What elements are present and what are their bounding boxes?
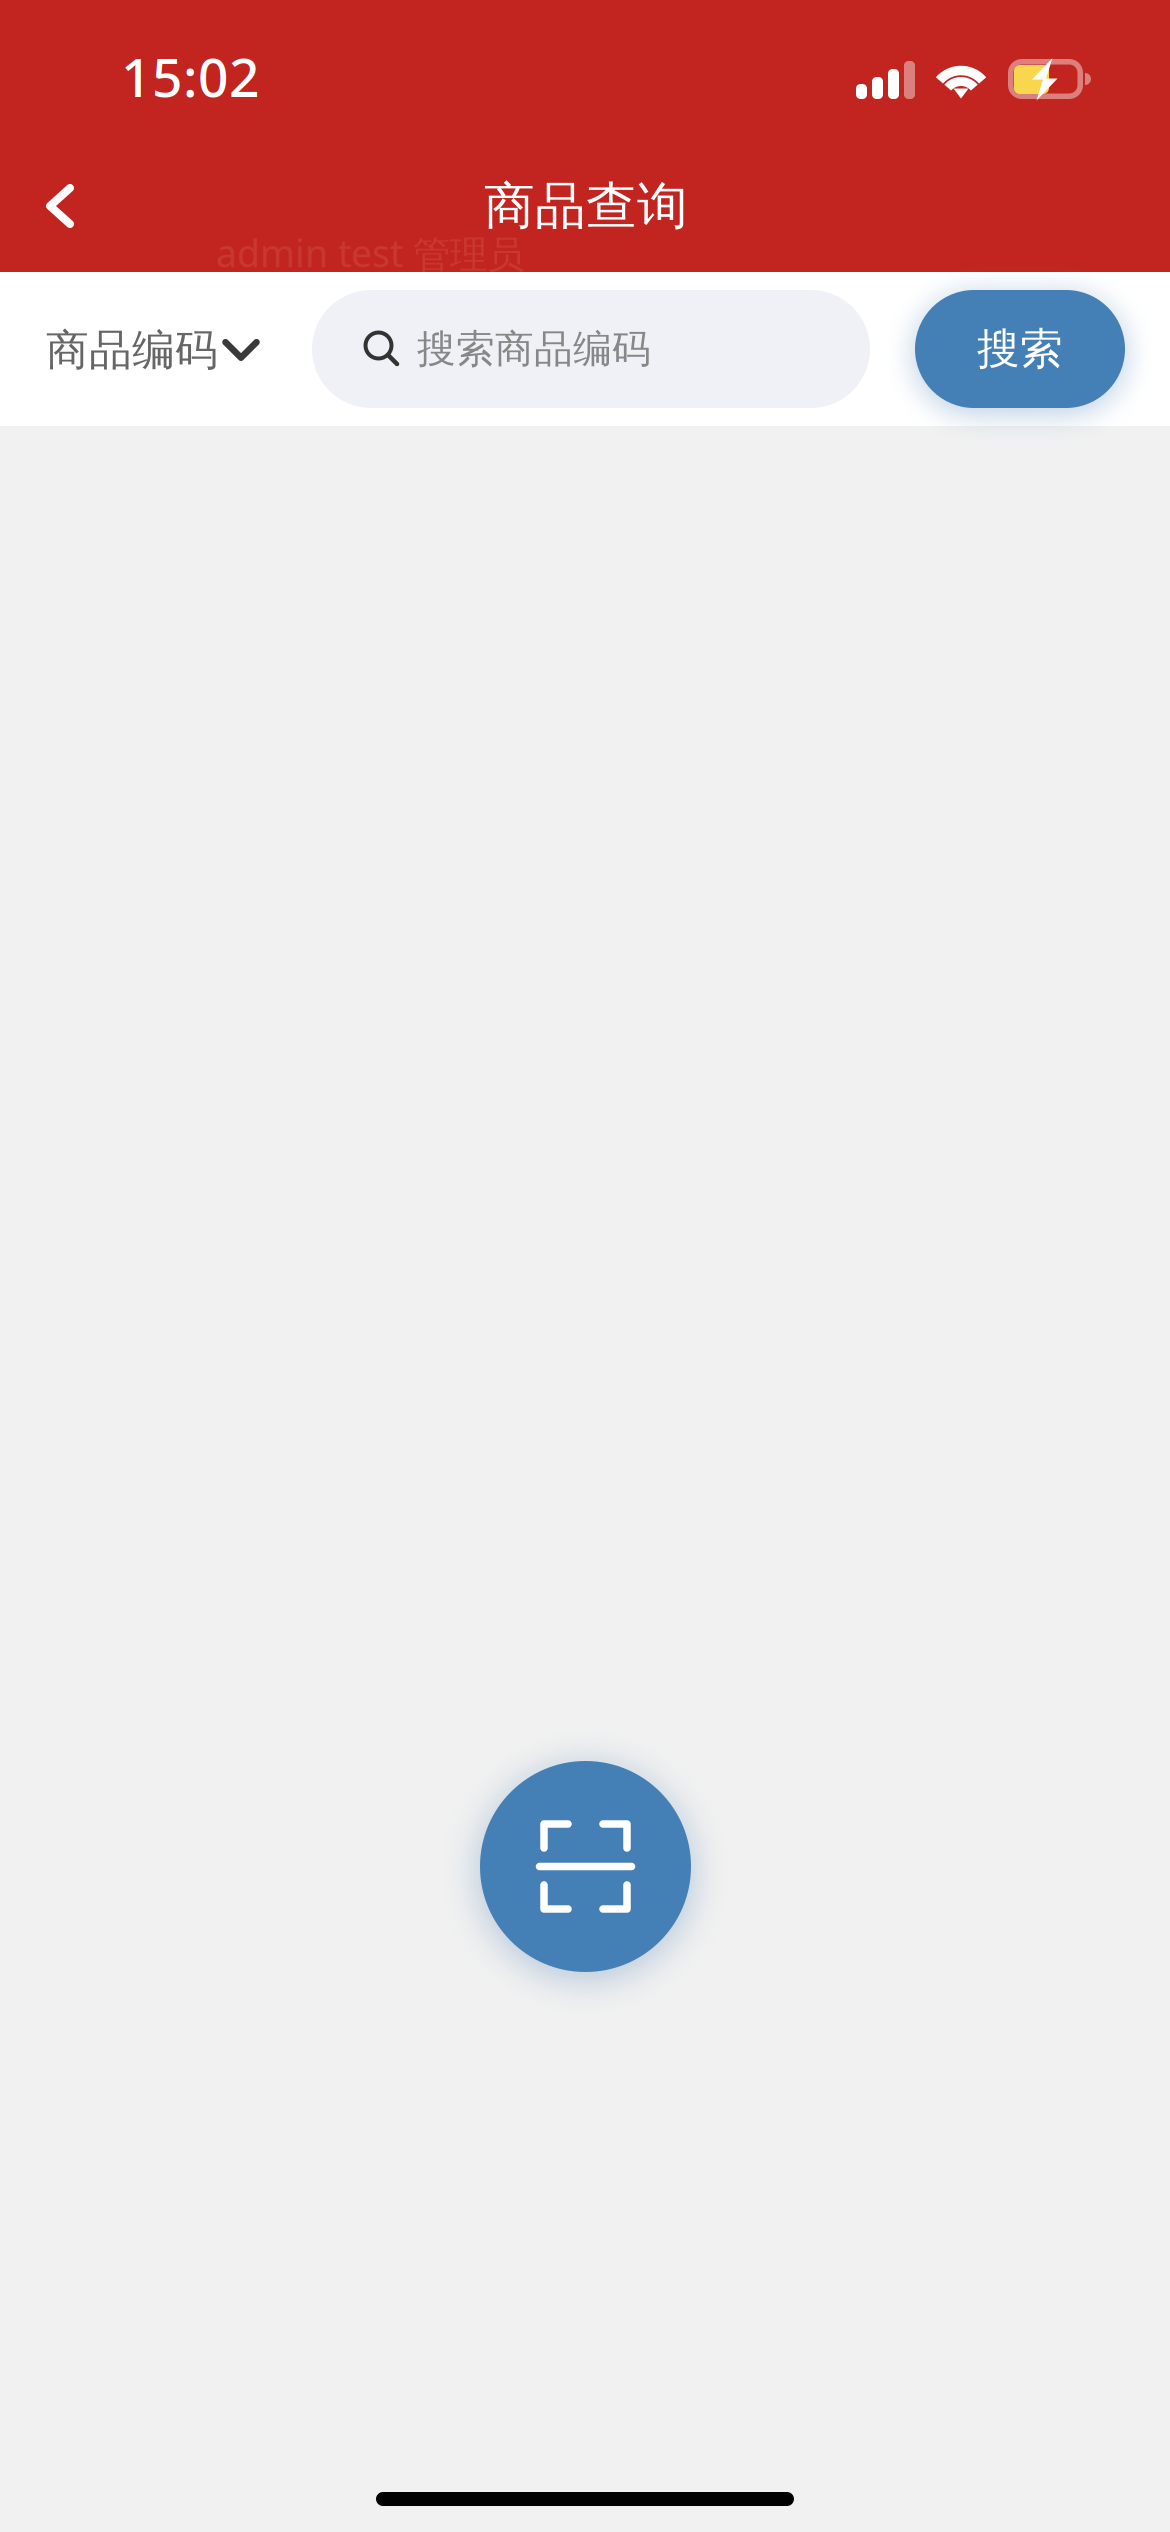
staticText: 商品编码 xyxy=(46,324,218,376)
button[interactable]: 商品编码 xyxy=(36,298,270,402)
button[interactable]: Scan barcode xyxy=(480,1761,691,1972)
staticText: admin test 管理员 xyxy=(216,228,524,278)
staticText: 商品查询 xyxy=(484,175,688,237)
button[interactable]: 搜索 xyxy=(915,290,1125,408)
staticText: 15:02 xyxy=(121,41,260,112)
staticText: 搜索 xyxy=(977,323,1063,375)
button[interactable]: Back xyxy=(10,154,110,258)
staticText: 搜索商品编码 xyxy=(417,325,651,373)
button[interactable]: 搜索商品编码 xyxy=(312,290,870,408)
